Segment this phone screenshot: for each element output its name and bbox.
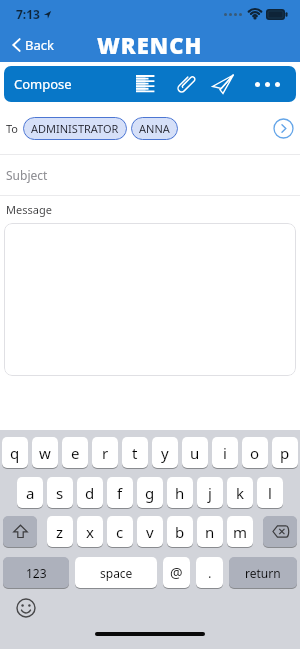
button[interactable]: a	[17, 477, 43, 509]
staticText: e	[71, 443, 80, 463]
staticText: Back	[25, 36, 54, 54]
staticText: space	[100, 565, 133, 581]
button[interactable]: z	[47, 516, 73, 548]
staticText: @	[170, 563, 183, 582]
button[interactable]: j	[197, 477, 223, 509]
staticText: f	[117, 483, 123, 503]
button[interactable]	[205, 66, 241, 102]
staticText: q	[10, 443, 20, 463]
button[interactable]: return	[229, 557, 297, 589]
staticText: .	[208, 564, 212, 582]
button[interactable]: space	[75, 557, 157, 589]
button[interactable]	[127, 66, 163, 102]
button[interactable]: @	[163, 557, 190, 589]
button[interactable]: c	[107, 516, 133, 548]
button[interactable]: u	[182, 437, 208, 469]
button[interactable]: d	[77, 477, 103, 509]
button[interactable]: 123	[3, 557, 69, 589]
staticText: v	[146, 522, 154, 542]
staticText: w	[39, 443, 51, 463]
button[interactable]: f	[107, 477, 133, 509]
button[interactable]: n	[197, 516, 223, 548]
staticText: 7:13	[16, 6, 40, 22]
button[interactable]: t	[122, 437, 148, 469]
staticText: WRENCH	[97, 30, 203, 60]
staticText: h	[175, 483, 185, 503]
staticText: n	[205, 522, 215, 542]
button[interactable]	[272, 117, 294, 139]
button[interactable]: m	[227, 516, 253, 548]
staticText: Message	[6, 202, 52, 217]
button[interactable]: k	[227, 477, 253, 509]
staticText: k	[236, 483, 245, 503]
button[interactable]: .	[196, 557, 223, 589]
staticText: return	[245, 565, 281, 581]
staticText: y	[161, 443, 169, 463]
button[interactable]: Back	[12, 36, 54, 54]
button[interactable]: g	[137, 477, 163, 509]
button[interactable]	[4, 223, 296, 376]
button[interactable]: s	[47, 477, 73, 509]
button[interactable]: e	[62, 437, 88, 469]
staticText: o	[250, 443, 260, 463]
button[interactable]: b	[167, 516, 193, 548]
button[interactable]: h	[167, 477, 193, 509]
button[interactable]: w	[32, 437, 58, 469]
button[interactable]: l	[257, 477, 283, 509]
staticText: d	[85, 483, 95, 503]
button[interactable]: Subject	[0, 155, 300, 195]
button[interactable]: i	[212, 437, 238, 469]
staticText: ANNA	[139, 121, 170, 136]
button[interactable]: p	[272, 437, 298, 469]
staticText: b	[175, 522, 185, 542]
staticText: m	[233, 522, 248, 542]
button[interactable]	[3, 516, 37, 548]
button[interactable]: o	[242, 437, 268, 469]
staticText: 123	[26, 565, 47, 581]
staticText: u	[190, 443, 200, 463]
staticText: p	[280, 443, 290, 463]
button[interactable]	[249, 66, 285, 102]
staticText: x	[86, 522, 94, 542]
staticText: l	[268, 483, 272, 503]
staticText: i	[223, 443, 227, 463]
button[interactable]: r	[92, 437, 118, 469]
staticText: Subject	[6, 167, 48, 183]
staticText: r	[102, 443, 109, 463]
staticText: ADMINISTRATOR	[31, 121, 119, 136]
staticText: To	[6, 121, 19, 136]
staticText: z	[56, 522, 64, 542]
button[interactable]	[168, 66, 204, 102]
button[interactable]: ANNA	[131, 117, 178, 140]
staticText: j	[208, 483, 212, 503]
button[interactable]: v	[137, 516, 163, 548]
button[interactable]: x	[77, 516, 103, 548]
staticText: s	[56, 483, 64, 503]
staticText: g	[145, 483, 155, 503]
button[interactable]	[15, 597, 36, 618]
staticText: t	[132, 443, 138, 463]
staticText: c	[116, 522, 124, 542]
button[interactable]: ADMINISTRATOR	[23, 117, 127, 140]
button[interactable]	[263, 516, 297, 548]
staticText: a	[26, 483, 35, 503]
staticText: Compose	[14, 75, 72, 93]
button[interactable]: q	[2, 437, 28, 469]
button[interactable]: y	[152, 437, 178, 469]
